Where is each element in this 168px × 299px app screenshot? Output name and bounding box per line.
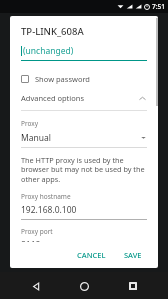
staticText: Proxy port	[21, 227, 53, 236]
staticText: Show password	[35, 74, 90, 84]
staticText: CANCEL	[77, 250, 106, 260]
staticText: Advanced options	[21, 93, 138, 103]
button[interactable]: Home	[71, 273, 97, 299]
button[interactable]: SAVE	[118, 246, 148, 264]
button[interactable]: Back	[23, 273, 49, 299]
staticText: 192.168.0.100	[21, 204, 77, 216]
staticText: TP-LINK_608A	[21, 25, 84, 38]
staticText: SAVE	[124, 250, 142, 260]
button[interactable]: Recent apps	[120, 273, 146, 299]
staticText: 7:51	[152, 2, 165, 11]
staticText: 8118	[21, 239, 41, 242]
button[interactable]: CANCEL	[71, 246, 112, 264]
button[interactable]: Advanced options	[21, 90, 147, 106]
button[interactable]: Manual	[21, 131, 147, 144]
staticText: The HTTP proxy is used by the browser bu…	[21, 155, 147, 185]
staticText: Proxy	[21, 119, 39, 128]
button[interactable]: Show password	[21, 72, 147, 86]
staticText: Proxy hostname	[21, 192, 71, 201]
staticText: Manual	[21, 132, 140, 144]
staticText: (unchanged)	[23, 45, 74, 57]
